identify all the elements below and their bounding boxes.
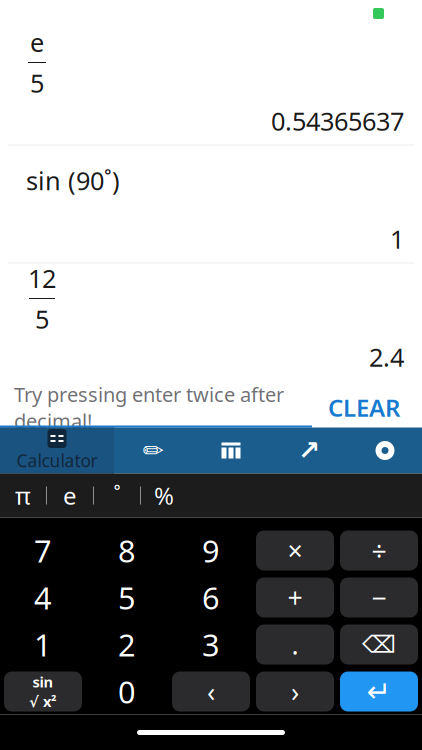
staticText: ›	[291, 674, 299, 709]
button[interactable]: −	[340, 577, 418, 617]
staticText: −	[371, 580, 386, 615]
button[interactable]: π	[0, 473, 46, 517]
button[interactable]: .	[256, 624, 334, 664]
button[interactable]: Functions	[4, 671, 82, 711]
staticText: ✏	[142, 436, 163, 465]
button[interactable]: 8	[88, 530, 166, 570]
button[interactable]: 0	[88, 671, 166, 711]
staticText: sin (90˚)	[26, 164, 120, 197]
button[interactable]: Enter	[340, 671, 418, 711]
staticText: CLEAR	[328, 392, 400, 423]
staticText: 2.4	[369, 340, 404, 374]
button[interactable]: ˚	[94, 473, 140, 517]
staticText: ↗	[298, 435, 320, 466]
staticText: ˚	[113, 480, 120, 511]
staticText: ⌫	[362, 631, 396, 658]
staticText: ↵	[366, 675, 391, 708]
staticText: 5	[35, 302, 49, 336]
staticText: 5	[118, 577, 136, 618]
staticText: 0.54365637	[271, 104, 404, 138]
button[interactable]: 7	[4, 530, 82, 570]
staticText: Calculator	[16, 449, 97, 472]
staticText: .	[291, 627, 298, 662]
button[interactable]: Calculator	[0, 427, 114, 473]
staticText: 4	[34, 577, 52, 618]
staticText: 12	[28, 261, 56, 295]
staticText: +	[287, 580, 302, 615]
button[interactable]: e	[47, 473, 93, 517]
button[interactable]: 1	[4, 624, 82, 664]
button[interactable]: %	[141, 473, 187, 517]
button[interactable]: Notes	[114, 427, 192, 473]
button[interactable]: 4	[4, 577, 82, 617]
staticText: e	[30, 25, 44, 59]
staticText: 1	[390, 222, 404, 256]
staticText: 5	[30, 66, 44, 100]
staticText: 1	[34, 624, 52, 665]
button[interactable]: Table	[192, 427, 270, 473]
staticText: sin	[32, 672, 53, 691]
staticText: 9	[202, 530, 220, 571]
staticText: 8	[118, 530, 136, 571]
staticText: 3	[202, 624, 220, 665]
button[interactable]: CLEAR	[316, 386, 412, 429]
button[interactable]: ÷	[340, 530, 418, 570]
button[interactable]: 3	[172, 624, 250, 664]
button[interactable]: ›	[256, 671, 334, 711]
staticText: 6	[202, 577, 220, 618]
button[interactable]: +	[256, 577, 334, 617]
button[interactable]: Delete	[340, 624, 418, 664]
staticText: 0	[118, 671, 136, 712]
button[interactable]: 5	[88, 577, 166, 617]
button[interactable]: ‹	[172, 671, 250, 711]
staticText: π	[15, 480, 31, 511]
button[interactable]: Graph	[270, 427, 348, 473]
staticText: 2	[118, 624, 136, 665]
button[interactable]: Settings	[348, 427, 422, 473]
button[interactable]: 6	[172, 577, 250, 617]
staticText: √ x²	[29, 691, 57, 711]
staticText: e	[63, 480, 77, 511]
button[interactable]: ×	[256, 530, 334, 570]
staticText: Try pressing enter twice after decimal!	[14, 381, 284, 434]
staticText: ÷	[371, 533, 386, 568]
button[interactable]: 9	[172, 530, 250, 570]
staticText: %	[154, 480, 174, 511]
button[interactable]: 2	[88, 624, 166, 664]
staticText: ‹	[207, 674, 215, 709]
staticText: 7	[34, 530, 52, 571]
staticText: ×	[287, 533, 302, 568]
